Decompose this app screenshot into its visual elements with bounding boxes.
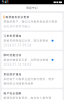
staticText: 限时优惠活动 — [3, 53, 21, 57]
staticText: 购票服务协议更新 — [5, 15, 29, 19]
staticText: 账户安全提醒 — [3, 92, 21, 95]
staticText: 精选好物低至五折，立即前往抢购 — [3, 58, 48, 61]
staticText: 2024-01-15 09:24 — [3, 44, 31, 47]
staticText: 2024-01-14 18:03 — [3, 63, 31, 66]
staticText: 您购买的商品已出库，请注意查收 — [3, 39, 48, 42]
button[interactable]: 购票服务协议更新 — [1, 13, 62, 30]
staticText: 消息中心 — [26, 6, 38, 9]
button[interactable]: 限时优惠活动 — [1, 51, 62, 69]
staticText: 系统维护通知 — [3, 73, 21, 76]
staticText: 9:41 — [2, 0, 9, 4]
staticText: 尊敬的用户，我们已对服务条款进行更新 — [3, 20, 57, 23]
button[interactable]: 系统维护通知 — [1, 70, 62, 88]
staticText: 检测到新设备登录，如非本人操作请 — [3, 96, 51, 100]
staticText: 系统将于今晚零点进行例行维护，维护 — [3, 77, 54, 81]
staticText: 期间部分功能暂停使用 — [3, 82, 33, 85]
button[interactable]: 账户安全提醒 — [1, 89, 62, 100]
staticText: 订单发货通知 — [3, 34, 21, 38]
button[interactable]: 订单发货通知 — [1, 32, 62, 50]
staticText: 请您及时查阅并确认 — [3, 25, 30, 28]
